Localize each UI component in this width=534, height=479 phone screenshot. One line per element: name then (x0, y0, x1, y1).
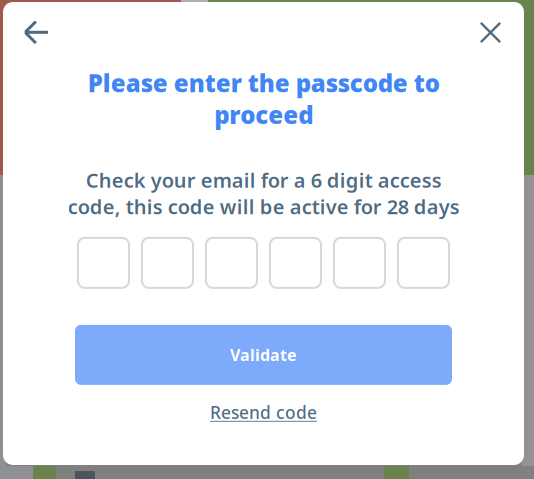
button[interactable]: Close (468, 14, 524, 55)
staticText: Please enter the passcode to proceed (87, 67, 439, 131)
staticText: Validate (230, 344, 297, 365)
staticText: Check your email for a 6 digit access co… (67, 167, 459, 220)
button[interactable]: Resend code (200, 396, 327, 429)
staticText: Resend code (210, 401, 317, 424)
button[interactable]: Validate (75, 325, 452, 385)
button[interactable]: Back (3, 14, 60, 54)
